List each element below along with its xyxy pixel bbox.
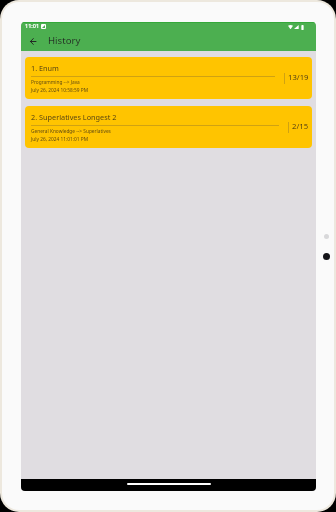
staticText: History (48, 34, 81, 47)
staticText: Programming --> Java (31, 79, 80, 86)
staticText: 2/15 (292, 121, 309, 131)
staticText: July 26, 2024 11:01:01 PM (31, 136, 88, 143)
staticText: 2. Superlatives Longest 2 (31, 112, 117, 122)
button[interactable]: 1. Enum (25, 57, 312, 99)
staticText: 11:01 (25, 22, 40, 29)
staticText: General Knowledge --> Superlatives (31, 128, 111, 135)
staticText: July 26, 2024 10:58:59 PM (31, 87, 88, 94)
button[interactable]: Back (25, 34, 41, 50)
button[interactable]: 2. Superlatives Longest 2 (25, 106, 312, 148)
staticText: 13/19 (288, 72, 309, 82)
staticText: 1. Enum (31, 63, 59, 73)
